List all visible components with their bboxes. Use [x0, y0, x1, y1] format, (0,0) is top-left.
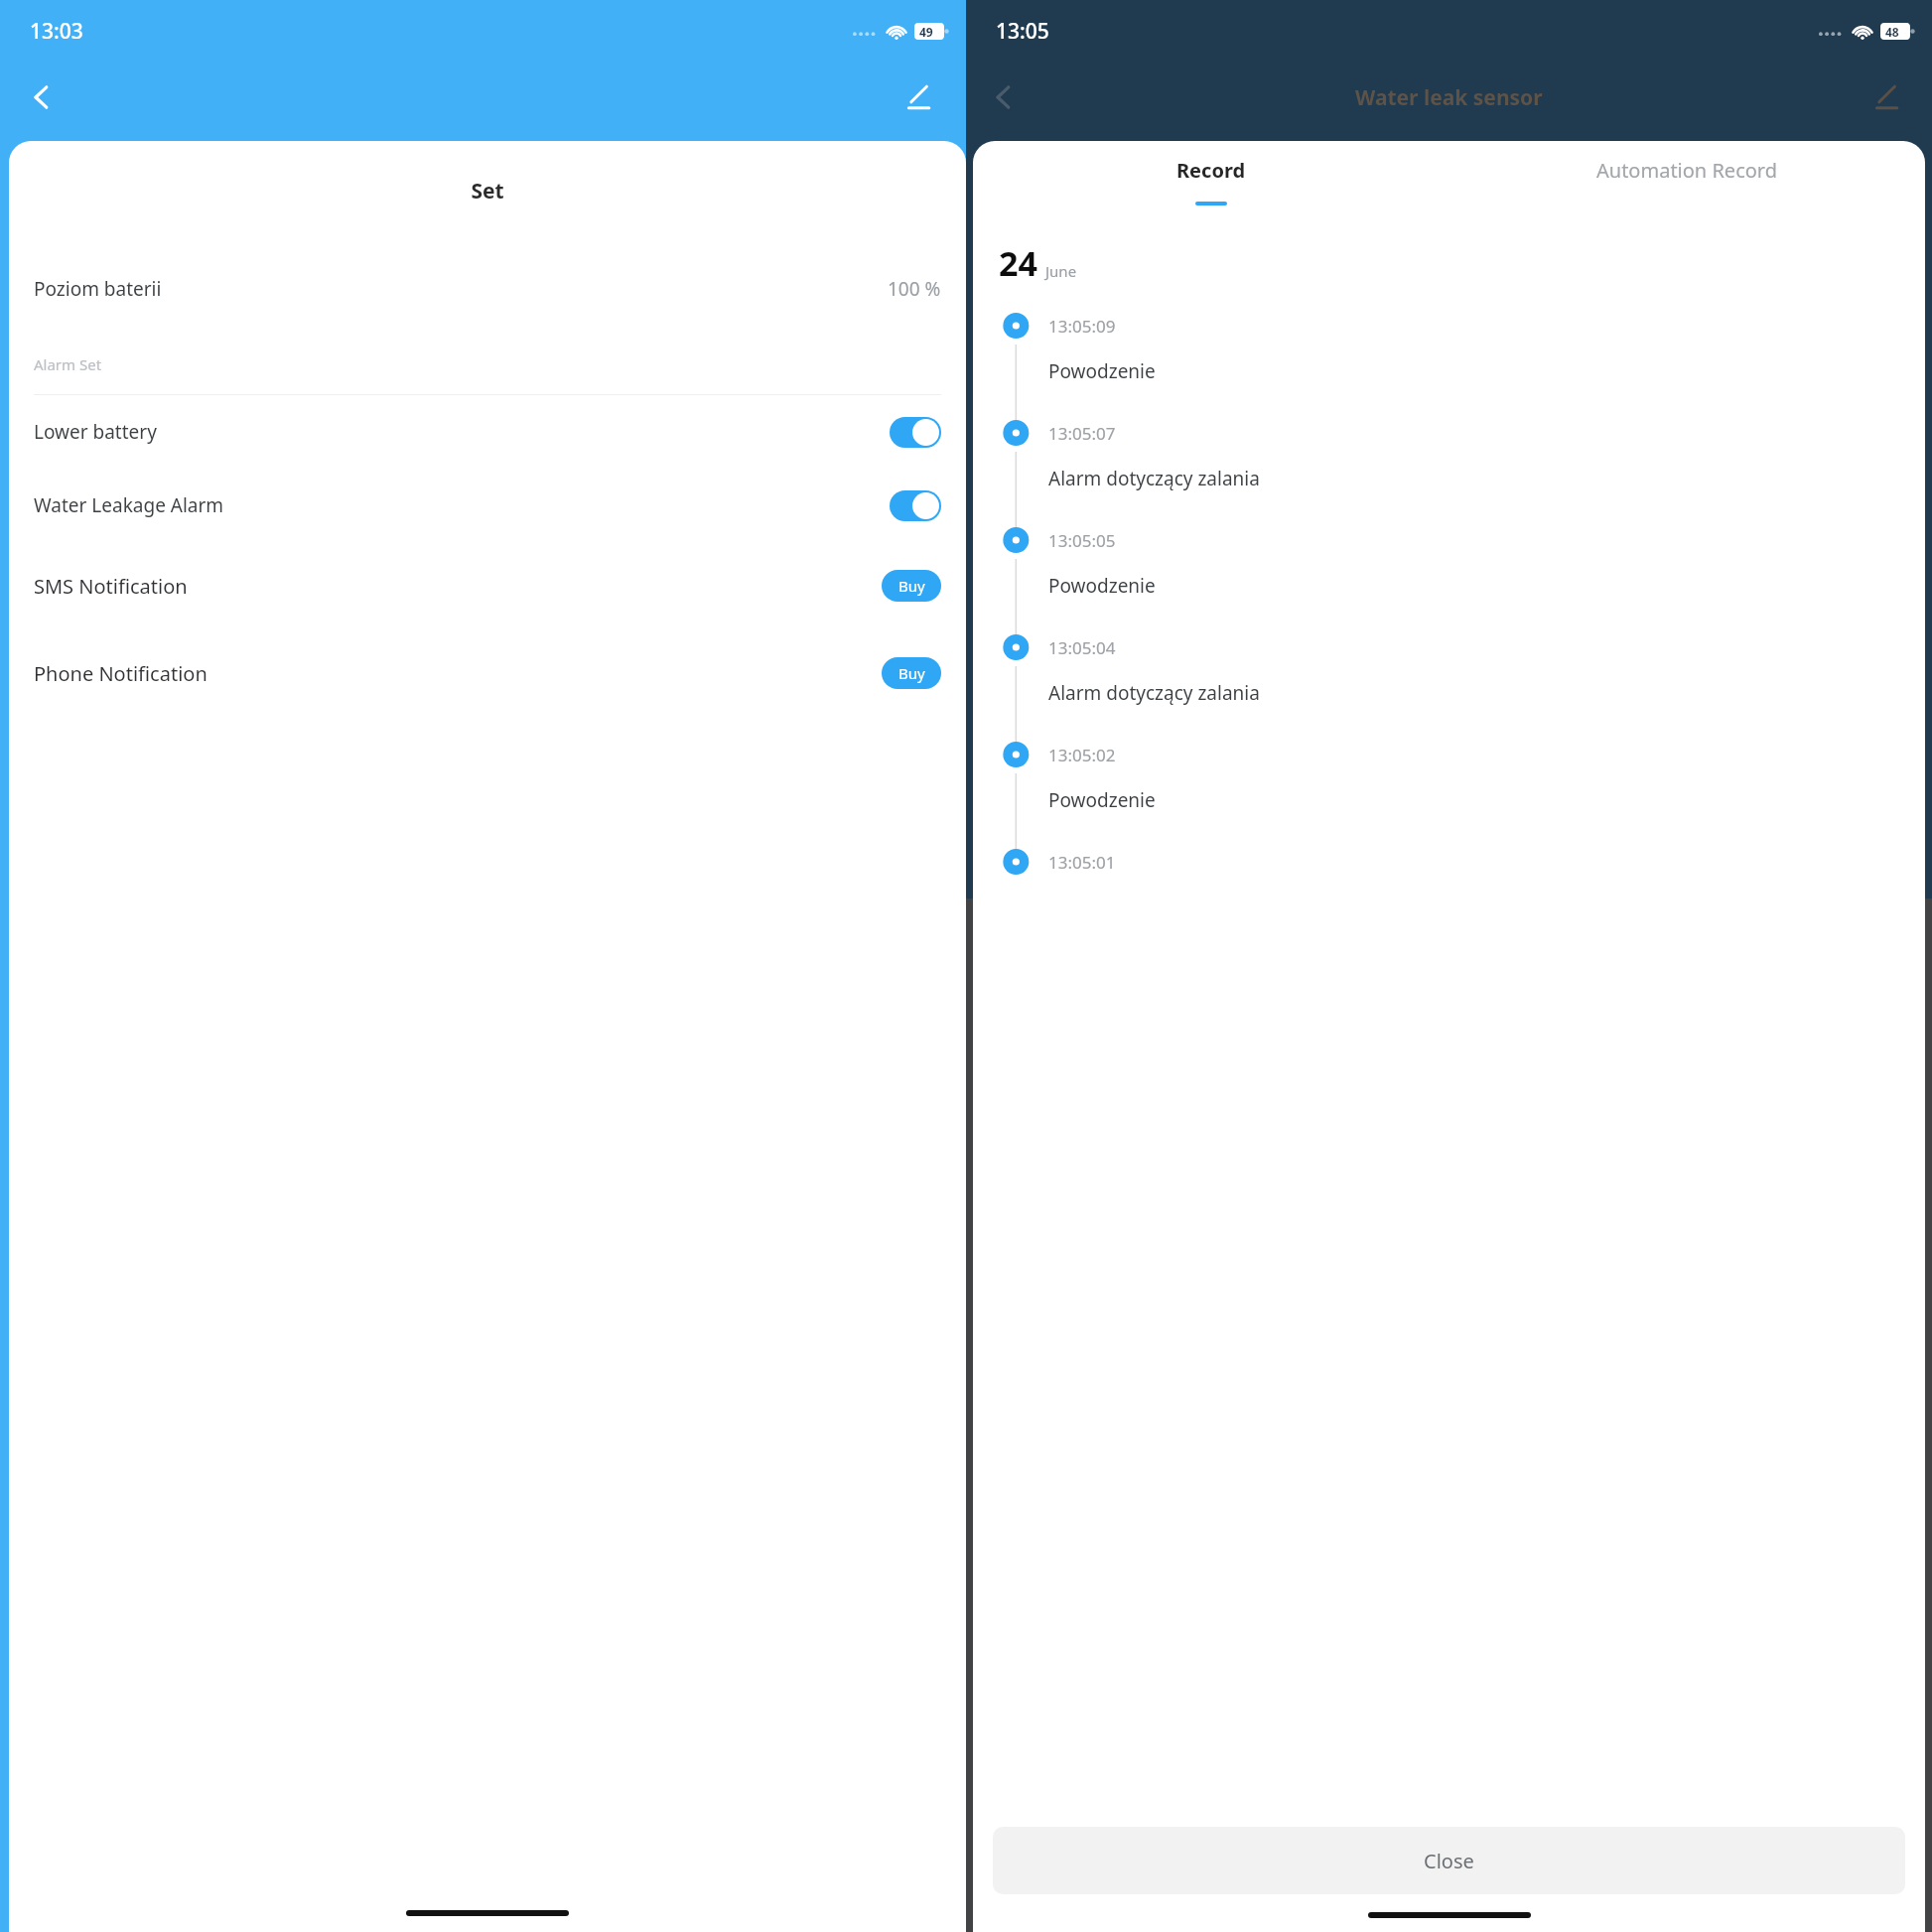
staticText: 13:05:04	[1048, 636, 1116, 659]
staticText: 13:05	[996, 17, 1049, 46]
staticText: Water leak sensor	[1355, 83, 1543, 112]
staticText: 49	[919, 24, 933, 40]
button[interactable]: Edit	[891, 69, 946, 125]
staticText: Record	[1176, 157, 1246, 184]
button[interactable]: Edit	[1859, 69, 1914, 125]
staticText: Set	[9, 177, 966, 206]
button[interactable]: Buy	[882, 570, 941, 602]
staticText: 48	[1885, 24, 1899, 40]
staticText: 13:05:05	[1048, 529, 1116, 552]
staticText: June	[1045, 261, 1077, 281]
button[interactable]: Back	[976, 69, 1032, 125]
staticText: 100 %	[888, 276, 941, 302]
staticText: 13:05:02	[1048, 744, 1116, 766]
staticText: 13:05:01	[1048, 851, 1116, 874]
staticText: Buy	[898, 663, 925, 683]
staticText: Alarm dotyczący zalania	[1048, 466, 1260, 491]
staticText: Phone Notification	[34, 660, 207, 687]
staticText: Automation Record	[1596, 157, 1777, 184]
staticText: 13:05:09	[1048, 315, 1116, 338]
staticText: Alarm Set	[34, 354, 102, 374]
staticText: Close	[1424, 1848, 1474, 1874]
staticText: 24	[999, 240, 1037, 286]
staticText: 13:05:07	[1048, 422, 1116, 445]
button[interactable]: Close	[993, 1827, 1905, 1894]
button[interactable]: Record	[973, 141, 1449, 218]
button[interactable]: Automation Record	[1449, 141, 1925, 218]
staticText: Powodzenie	[1048, 787, 1156, 813]
button[interactable]: Poziom baterii	[34, 263, 941, 315]
button[interactable]: Lower battery	[34, 395, 941, 469]
staticText: 13:03	[30, 17, 83, 46]
staticText: SMS Notification	[34, 573, 188, 600]
staticText: Buy	[898, 576, 925, 596]
staticText: Alarm dotyczący zalania	[1048, 680, 1260, 706]
button[interactable]: Buy	[882, 657, 941, 689]
staticText: Powodzenie	[1048, 573, 1156, 599]
staticText: Lower battery	[34, 419, 157, 445]
button[interactable]: Water Leakage Alarm	[34, 469, 941, 542]
staticText: Water Leakage Alarm	[34, 492, 224, 518]
staticText: Poziom baterii	[34, 276, 162, 302]
staticText: Powodzenie	[1048, 358, 1156, 384]
button[interactable]: Back	[14, 69, 69, 125]
